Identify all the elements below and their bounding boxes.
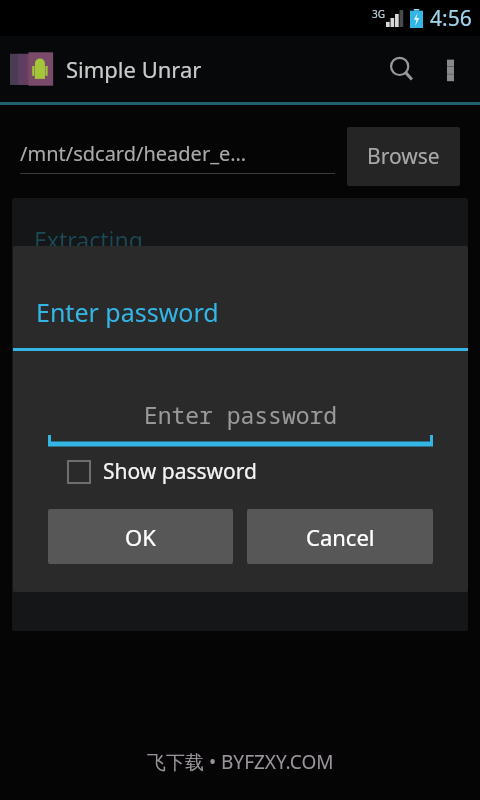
- button[interactable]: Search: [374, 36, 430, 102]
- staticText: 4:56: [430, 4, 472, 33]
- button[interactable]: OK: [48, 509, 233, 564]
- button[interactable]: Browse: [347, 127, 460, 186]
- staticText: Extracting: [34, 224, 143, 255]
- staticText: Cancel: [306, 522, 375, 552]
- staticText: Simple Unrar: [66, 54, 202, 84]
- staticText: Enter password: [36, 295, 219, 329]
- staticText: Show password: [103, 457, 257, 486]
- button[interactable]: Cancel: [247, 509, 433, 564]
- staticText: 飞下载 • BYFZXY.COM: [147, 749, 334, 775]
- staticText: 3G: [372, 7, 385, 21]
- staticText: Enter password: [48, 399, 433, 430]
- staticText: Browse: [367, 142, 440, 171]
- button[interactable]: Show password: [68, 457, 257, 486]
- staticText: OK: [125, 522, 156, 552]
- staticText: /mnt/sdcard/header_e…: [20, 140, 247, 167]
- button[interactable]: More options: [430, 36, 470, 102]
